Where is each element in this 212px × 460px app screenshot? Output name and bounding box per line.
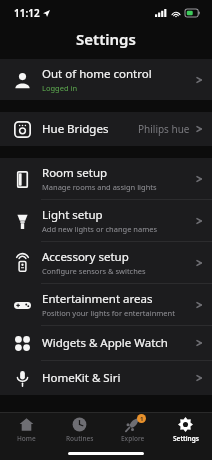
staticText: Light setup (42, 207, 103, 223)
staticText: Room setup (42, 165, 108, 181)
button[interactable]: HomeKit & Siri (0, 361, 212, 395)
button[interactable]: Explore (106, 413, 159, 446)
staticText: HomeKit & Siri (42, 370, 121, 386)
staticText: Settings (76, 29, 136, 49)
staticText: Hue Bridges (42, 121, 109, 137)
staticText: Add new lights or change names (42, 224, 158, 234)
staticText: Home (17, 434, 36, 443)
staticText: 11:12 (14, 6, 40, 20)
button[interactable]: Accessory setup (0, 242, 212, 283)
staticText: Explore (121, 434, 145, 443)
staticText: Out of home control (42, 66, 152, 82)
staticText: Accessory setup (42, 249, 129, 265)
staticText: Routines (66, 434, 94, 443)
staticText: Logged in (42, 83, 78, 93)
button[interactable]: Room setup (0, 158, 212, 199)
button[interactable]: Hue Bridges (0, 112, 212, 146)
staticText: Philips hue (138, 122, 190, 136)
button[interactable]: Home (0, 413, 53, 446)
staticText: Position your lights for entertainment (42, 308, 175, 318)
button[interactable]: Out of home control (0, 59, 212, 100)
button[interactable]: Light setup (0, 200, 212, 241)
staticText: Configure sensors & switches (42, 266, 146, 276)
button[interactable]: Entertainment areas (0, 284, 212, 325)
staticText: Entertainment areas (42, 291, 153, 307)
staticText: Widgets & Apple Watch (42, 335, 168, 351)
button[interactable]: Widgets & Apple Watch (0, 326, 212, 360)
staticText: 1 (140, 415, 144, 423)
button[interactable]: Routines (53, 413, 106, 446)
staticText: Settings (173, 434, 199, 443)
button[interactable]: Settings (159, 413, 212, 446)
staticText: Manage rooms and assign lights (42, 182, 157, 192)
